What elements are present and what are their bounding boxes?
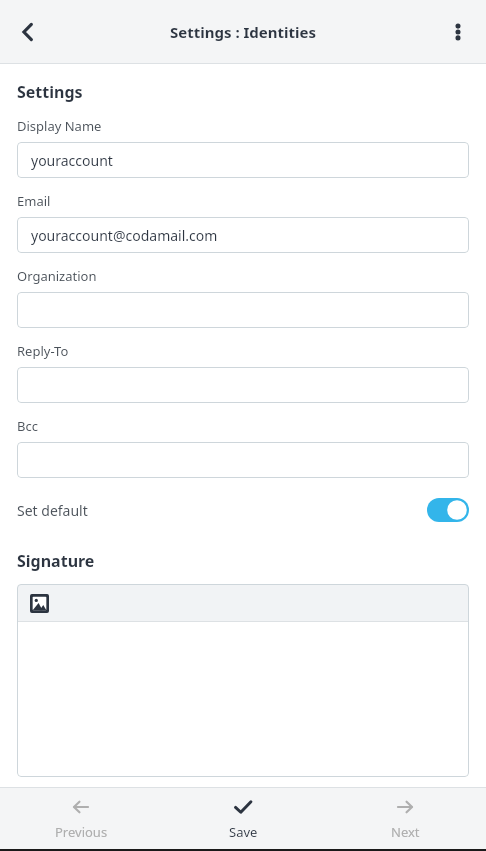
button[interactable] bbox=[17, 367, 469, 403]
button[interactable]: More options bbox=[430, 4, 486, 60]
staticText: Settings : Identities bbox=[170, 22, 316, 42]
staticText: Settings bbox=[17, 81, 83, 103]
staticText: Save bbox=[229, 823, 258, 841]
staticText: youraccount@codamail.com bbox=[31, 226, 218, 245]
staticText: Display Name bbox=[17, 117, 102, 135]
button[interactable]: youraccount bbox=[17, 142, 469, 178]
button[interactable]: Back bbox=[0, 4, 56, 60]
button[interactable]: Previous bbox=[0, 788, 162, 849]
button[interactable] bbox=[17, 292, 469, 328]
button[interactable] bbox=[17, 442, 469, 478]
button[interactable]: youraccount@codamail.com bbox=[17, 217, 469, 253]
staticText: Previous bbox=[55, 823, 108, 841]
button[interactable]: Set default bbox=[0, 492, 486, 528]
button[interactable] bbox=[17, 622, 469, 777]
staticText: Signature bbox=[17, 550, 95, 572]
button[interactable]: Save bbox=[162, 788, 324, 849]
staticText: Bcc bbox=[17, 417, 38, 435]
button[interactable]: Next bbox=[324, 788, 486, 849]
staticText: Next bbox=[391, 823, 420, 841]
staticText: youraccount bbox=[31, 151, 113, 170]
staticText: Reply-To bbox=[17, 342, 69, 360]
staticText: Organization bbox=[17, 267, 97, 285]
staticText: Email bbox=[17, 192, 51, 210]
button[interactable]: Insert image bbox=[24, 588, 54, 618]
staticText: Set default bbox=[17, 501, 88, 520]
